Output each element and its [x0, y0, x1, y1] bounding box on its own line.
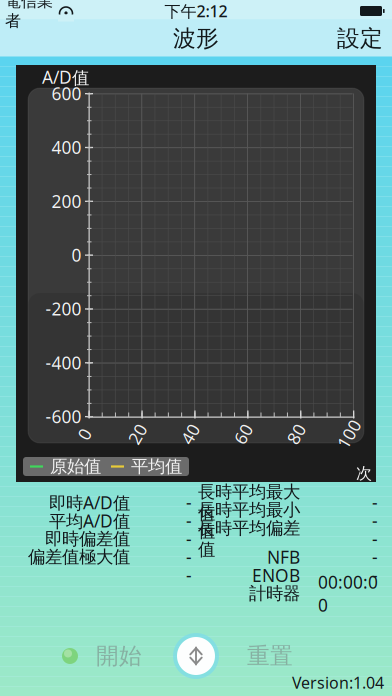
staticText: -: [372, 491, 378, 514]
staticText: 20: [127, 422, 147, 445]
staticText: 00:00:00: [318, 570, 378, 616]
staticText: -600: [45, 405, 81, 428]
staticText: 設定: [337, 25, 383, 52]
staticText: -200: [45, 297, 81, 320]
staticText: Version:1.04: [292, 672, 384, 693]
staticText: 100: [334, 422, 364, 445]
staticText: 平均值: [131, 456, 182, 477]
staticText: -: [186, 491, 192, 514]
staticText: 0: [71, 243, 81, 266]
staticText: 60: [233, 422, 253, 445]
button[interactable]: 開始: [62, 634, 172, 678]
staticText: -: [372, 546, 378, 569]
staticText: 重置: [247, 642, 293, 670]
staticText: 80: [286, 422, 306, 445]
staticText: A/D值: [42, 65, 89, 88]
staticText: ENOB: [252, 564, 300, 587]
staticText: -: [372, 564, 378, 587]
staticText: 原始值: [50, 456, 101, 477]
staticText: 波形: [173, 25, 219, 52]
staticText: 電信業者: [5, 0, 53, 31]
staticText: -: [186, 546, 192, 569]
staticText: 長時平均偏差值: [198, 518, 300, 560]
staticText: 40: [180, 422, 200, 445]
staticText: NFB: [267, 546, 300, 569]
staticText: 0: [79, 422, 89, 445]
staticText: 200: [51, 190, 81, 213]
staticText: 400: [51, 136, 81, 159]
staticText: -: [186, 527, 192, 550]
staticText: -: [186, 564, 192, 587]
staticText: 即時A/D值: [49, 491, 130, 514]
staticText: 長時平均最小值: [198, 499, 300, 542]
staticText: 平均A/D值: [49, 509, 130, 532]
staticText: -: [372, 509, 378, 532]
button[interactable]: 重置: [240, 634, 300, 678]
staticText: -400: [45, 351, 81, 374]
staticText: 下午2:12: [164, 0, 227, 22]
button[interactable]: 設定: [328, 20, 392, 57]
staticText: -: [186, 509, 192, 532]
staticText: 次: [356, 464, 372, 483]
staticText: 長時平均最大值: [198, 481, 300, 524]
staticText: 開始: [96, 642, 142, 670]
staticText: 600: [51, 82, 81, 105]
staticText: 偏差值極大值: [28, 546, 130, 568]
staticText: 計時器: [249, 583, 300, 604]
staticText: 即時偏差值: [45, 528, 130, 550]
button[interactable]: Bluetooth: [171, 631, 221, 681]
staticText: -: [372, 527, 378, 550]
